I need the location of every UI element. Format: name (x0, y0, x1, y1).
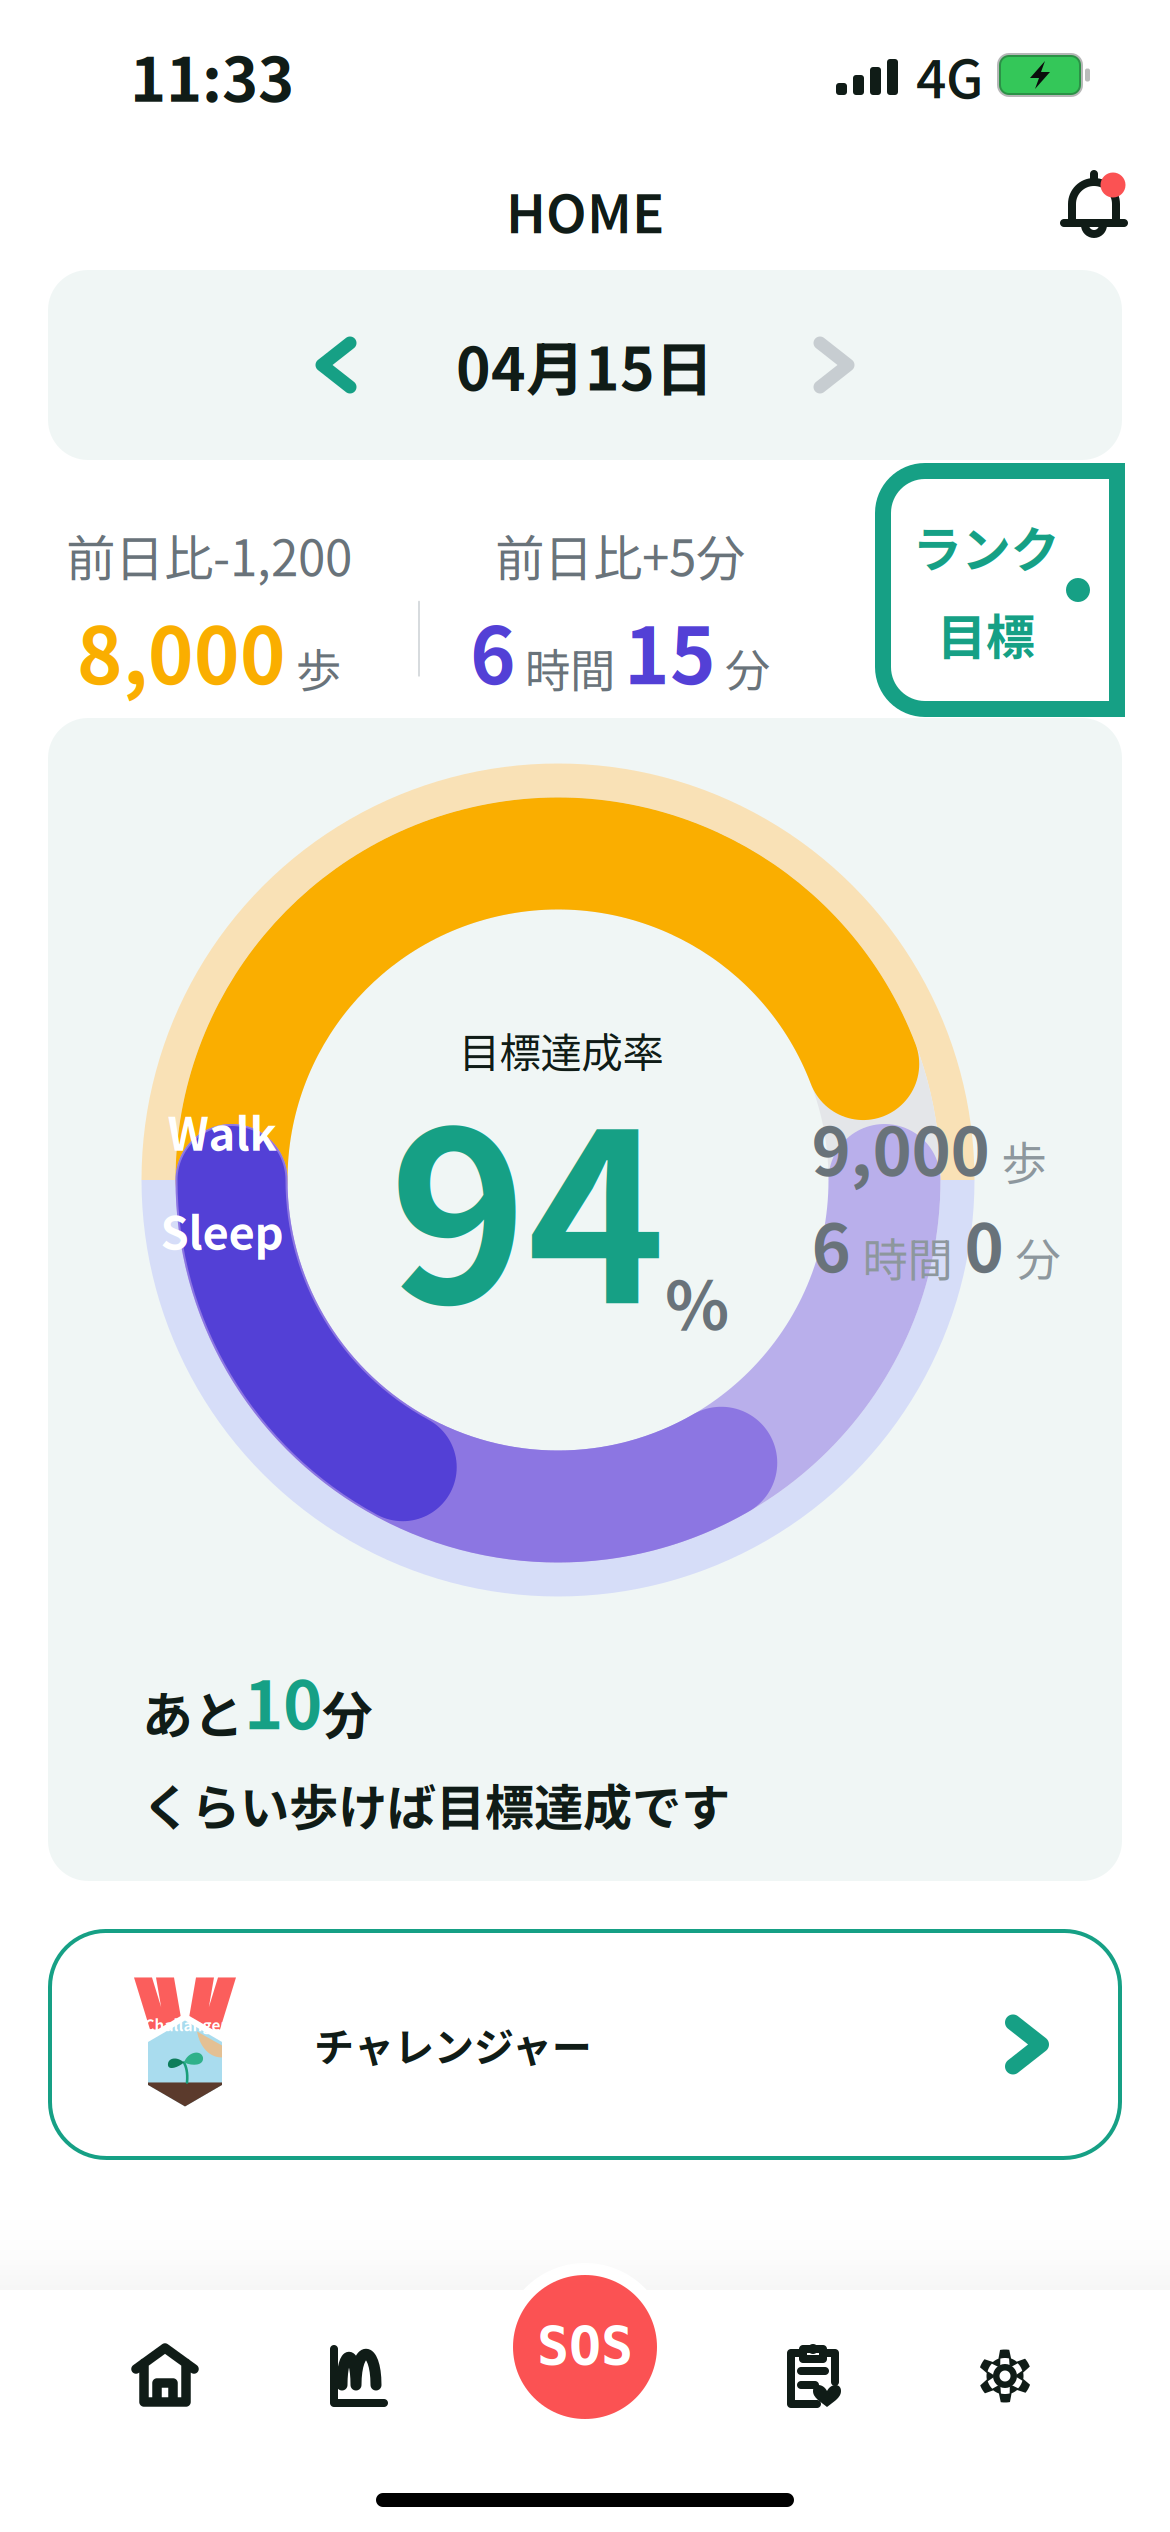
staticText: HOME (506, 171, 664, 249)
staticText: 歩 (296, 635, 341, 700)
staticText: 前日比-1,200 (66, 519, 352, 590)
button[interactable]: Records (776, 2336, 850, 2416)
staticText: 目標 (937, 598, 1035, 669)
staticText: チャレンジャー (314, 2015, 592, 2073)
staticText: 目標達成率 (458, 1020, 663, 1080)
staticText: 8,000 (77, 594, 286, 706)
staticText: SOS (537, 2315, 633, 2377)
button[interactable]: Next day (804, 330, 864, 400)
staticText: % (665, 1252, 729, 1349)
staticText: くらい歩けば目標達成です (142, 1768, 730, 1840)
staticText: 11:33 (130, 31, 294, 119)
button[interactable]: Previous day (306, 330, 366, 400)
staticText: あと (142, 1675, 244, 1749)
staticText: 15 (624, 594, 716, 706)
staticText: ランク (912, 511, 1059, 582)
staticText: 6 (470, 594, 516, 706)
staticText: 分 (322, 1675, 373, 1749)
staticText: 10 (244, 1652, 322, 1748)
staticText: 時間 (525, 635, 615, 700)
staticText: 94 (389, 1031, 665, 1371)
staticText: Walk (167, 1098, 276, 1164)
staticText: 6 (811, 1195, 850, 1291)
staticText: 04月15日 (456, 322, 714, 407)
staticText: 4G (916, 36, 983, 114)
button[interactable]: ランク (875, 463, 1170, 717)
staticText: Challanger (144, 2013, 227, 2036)
button[interactable]: SOS (501, 2263, 669, 2431)
staticText: 時間 (862, 1224, 952, 1289)
button[interactable]: Settings (968, 2336, 1042, 2416)
staticText: Sleep (160, 1197, 283, 1263)
staticText: 分 (1015, 1224, 1060, 1289)
staticText: 前日比+5分 (495, 519, 745, 590)
button[interactable]: Statistics (321, 2336, 395, 2416)
staticText: 9,000 (811, 1098, 989, 1195)
staticText: 分 (725, 635, 770, 700)
button[interactable]: Home (128, 2336, 202, 2416)
button[interactable]: Challanger (0, 1929, 1170, 2160)
staticText: 歩 (1001, 1127, 1046, 1193)
button[interactable]: Notifications (1054, 170, 1134, 250)
staticText: 0 (964, 1195, 1003, 1291)
